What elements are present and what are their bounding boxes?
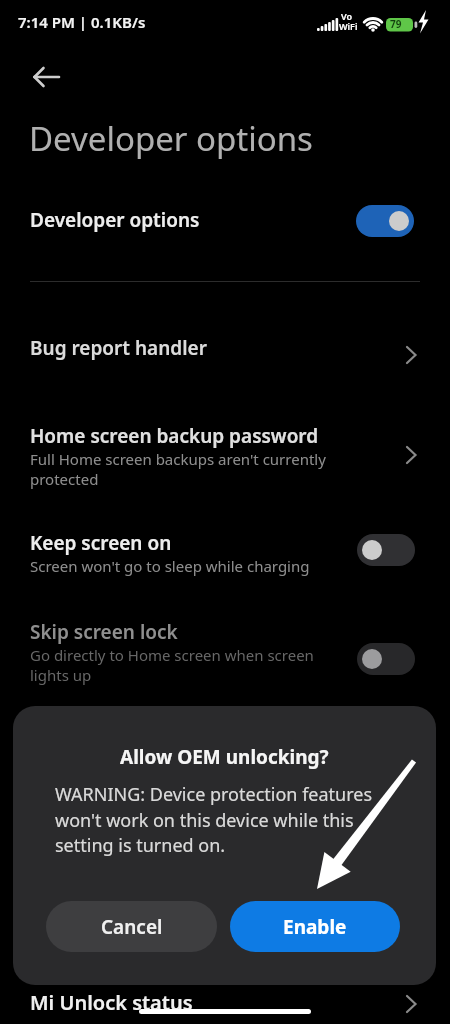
staticText: Full Home screen backups aren't currentl… <box>30 449 326 469</box>
staticText: Skip screen lock <box>30 619 178 645</box>
staticText: Cancel <box>101 914 163 940</box>
staticText: 7:14 PM | 0.1KB/s <box>18 12 146 32</box>
staticText: Developer options <box>29 116 313 161</box>
staticText: Allow OEM unlocking? <box>120 744 329 770</box>
staticText: Developer options <box>30 207 200 233</box>
button[interactable]: Keep screen on <box>0 526 450 578</box>
staticText: Mi Unlock status <box>30 989 193 1016</box>
staticText: Home screen backup password <box>30 423 319 449</box>
button[interactable] <box>357 534 415 566</box>
staticText: Enable <box>283 914 347 940</box>
staticText: protected <box>30 469 99 489</box>
staticText: WARNING: Device protection features won'… <box>55 782 373 857</box>
button[interactable] <box>357 643 415 675</box>
staticText: Bug report handler <box>30 335 207 361</box>
staticText: 79 <box>390 17 402 31</box>
staticText: Keep screen on <box>30 530 172 556</box>
staticText: Vo <box>341 10 353 22</box>
button[interactable]: Mi Unlock status <box>0 985 450 1024</box>
button[interactable]: Bug report handler <box>0 328 450 372</box>
button[interactable]: Cancel <box>46 901 217 952</box>
staticText: Screen won't go to sleep while charging <box>30 556 310 576</box>
button[interactable]: Developer options <box>0 198 450 246</box>
button[interactable]: Skip screen lock <box>0 614 450 686</box>
staticText: lights up <box>30 665 92 685</box>
staticText: Go directly to Home screen when screen <box>30 645 314 665</box>
staticText: WiFi <box>339 20 358 32</box>
button[interactable] <box>356 205 414 237</box>
button[interactable]: Enable <box>230 901 400 952</box>
button[interactable]: Home screen backup password <box>0 418 450 490</box>
button[interactable] <box>33 65 61 89</box>
